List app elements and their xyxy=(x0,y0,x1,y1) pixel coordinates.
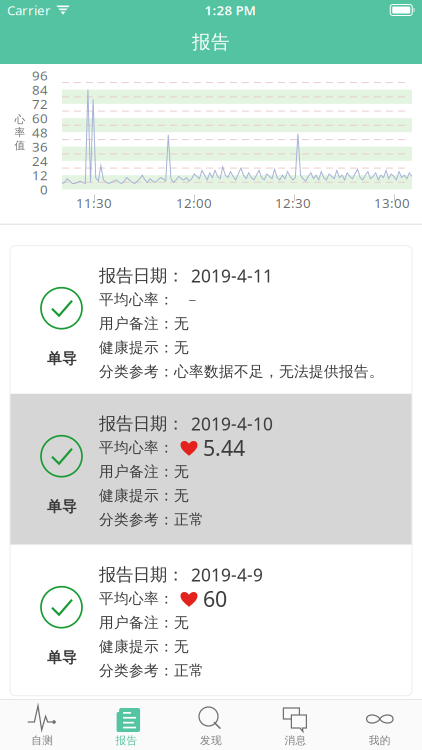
staticText: 13:00 xyxy=(374,194,410,212)
staticText: 60 xyxy=(32,109,48,127)
staticText: 值 xyxy=(14,139,25,152)
staticText: 自测 xyxy=(31,734,53,747)
staticText: 单导 xyxy=(47,649,77,667)
staticText: 无 xyxy=(174,487,189,505)
staticText: － xyxy=(185,291,200,309)
button[interactable]: 单导 xyxy=(10,394,412,545)
button[interactable]: 我的 xyxy=(338,700,422,750)
staticText: 无 xyxy=(174,463,189,481)
staticText: 健康提示： xyxy=(99,487,174,505)
staticText: 报告日期： xyxy=(99,265,184,286)
staticText: 60 xyxy=(203,584,227,613)
staticText: 单导 xyxy=(47,350,77,368)
button[interactable]: 单导 xyxy=(10,545,412,696)
staticText: 我的 xyxy=(369,734,391,747)
staticText: 单导 xyxy=(47,498,77,516)
staticText: 健康提示： xyxy=(99,638,174,656)
staticText: 平均心率： xyxy=(99,439,174,457)
staticText: 用户备注： xyxy=(99,315,174,333)
staticText: 分类参考： xyxy=(99,662,174,680)
staticText: 无 xyxy=(174,315,189,333)
button[interactable]: 发现 xyxy=(169,700,253,750)
staticText: 2019-4-9 xyxy=(191,563,263,586)
staticText: 率 xyxy=(14,126,25,139)
staticText: 报告 xyxy=(192,30,230,53)
staticText: 分类参考： xyxy=(99,363,174,381)
staticText: 12:30 xyxy=(275,194,311,212)
staticText: 无 xyxy=(174,638,189,656)
staticText: 12 xyxy=(32,166,48,184)
staticText: 24 xyxy=(32,152,48,170)
staticText: 84 xyxy=(32,81,48,98)
staticText: 报告日期： xyxy=(99,413,184,434)
staticText: 正常 xyxy=(174,662,204,680)
staticText: 报告 xyxy=(116,734,138,747)
staticText: 消息 xyxy=(284,734,306,747)
staticText: 5.44 xyxy=(203,433,245,462)
staticText: Carrier xyxy=(7,1,51,19)
staticText: 心 xyxy=(14,113,25,126)
staticText: 心率数据不足，无法提供报告。 xyxy=(174,363,384,381)
staticText: 平均心率： xyxy=(99,291,174,309)
staticText: 无 xyxy=(174,614,189,632)
staticText: 平均心率： xyxy=(99,590,174,608)
button[interactable]: 报告 xyxy=(84,700,169,750)
staticText: 无 xyxy=(174,339,189,357)
button[interactable]: 单导 xyxy=(10,246,412,394)
staticText: 36 xyxy=(32,138,48,155)
staticText: 分类参考： xyxy=(99,511,174,529)
staticText: 11:30 xyxy=(76,194,112,212)
staticText: 12:00 xyxy=(176,194,212,212)
staticText: 用户备注： xyxy=(99,614,174,632)
button[interactable]: 消息 xyxy=(253,700,338,750)
staticText: 用户备注： xyxy=(99,463,174,481)
staticText: 0 xyxy=(40,181,48,198)
staticText: 72 xyxy=(32,95,48,113)
staticText: 48 xyxy=(32,124,48,141)
staticText: 2019-4-11 xyxy=(191,264,273,287)
staticText: 报告日期： xyxy=(99,564,184,585)
button[interactable]: 自测 xyxy=(0,700,84,750)
staticText: 发现 xyxy=(200,734,222,747)
staticText: 正常 xyxy=(174,511,204,529)
staticText: 1:28 PM xyxy=(204,1,255,19)
staticText: 健康提示： xyxy=(99,339,174,357)
staticText: 2019-4-10 xyxy=(191,412,273,435)
staticText: 96 xyxy=(32,67,48,84)
